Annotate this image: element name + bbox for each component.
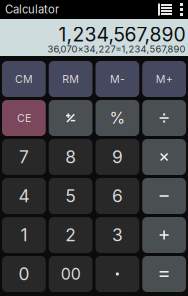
staticText: 1: [20, 224, 27, 245]
button[interactable]: 3: [95, 217, 139, 253]
button[interactable]: M+: [142, 61, 186, 97]
button[interactable]: Plus: [142, 217, 186, 253]
staticText: M+: [156, 72, 173, 85]
staticText: 5: [65, 185, 76, 206]
button[interactable]: Plus or minus: [49, 100, 93, 136]
staticText: 1,234,567,890: [58, 23, 185, 46]
staticText: 9: [112, 146, 123, 167]
staticText: %: [109, 108, 125, 128]
button[interactable]: 4: [2, 178, 46, 214]
staticText: M-: [110, 72, 125, 85]
button[interactable]: 1: [2, 217, 46, 253]
staticText: CE: [17, 111, 31, 124]
button[interactable]: Minus: [142, 178, 186, 214]
button[interactable]: 7: [2, 139, 46, 175]
button[interactable]: 6: [95, 178, 139, 214]
staticText: 2: [65, 224, 76, 245]
staticText: 7: [19, 146, 29, 167]
staticText: RM: [62, 72, 79, 85]
button[interactable]: Equals: [142, 256, 186, 292]
button[interactable]: More options: [176, 0, 187, 19]
staticText: 8: [65, 146, 76, 167]
button[interactable]: 00: [49, 256, 93, 292]
staticText: 0: [18, 263, 29, 284]
button[interactable]: 0: [2, 256, 46, 292]
button[interactable]: CM: [2, 61, 46, 97]
staticText: CM: [15, 72, 33, 85]
staticText: Calculator: [5, 3, 59, 16]
staticText: 3: [112, 224, 123, 245]
button[interactable]: 8: [49, 139, 93, 175]
button[interactable]: Multiply: [142, 139, 186, 175]
button[interactable]: M-: [95, 61, 139, 97]
staticText: 6: [112, 185, 123, 206]
button[interactable]: RM: [49, 61, 93, 97]
button[interactable]: %: [95, 100, 139, 136]
staticText: 00: [61, 264, 81, 284]
button[interactable]: Divide: [142, 100, 186, 136]
button[interactable]: History: [156, 0, 174, 19]
button[interactable]: 9: [95, 139, 139, 175]
button[interactable]: Decimal point: [95, 256, 139, 292]
button[interactable]: 2: [49, 217, 93, 253]
staticText: 36,070×34,227=1,234,567,890: [47, 43, 185, 55]
button[interactable]: 5: [49, 178, 93, 214]
staticText: 4: [18, 185, 29, 206]
button[interactable]: CE: [2, 100, 46, 136]
